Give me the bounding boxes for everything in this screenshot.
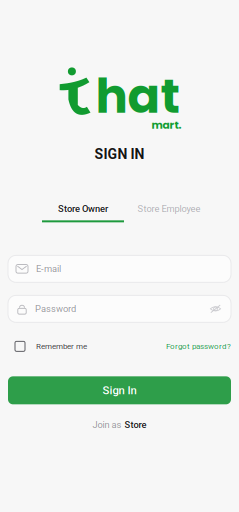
staticText: mart. bbox=[151, 117, 181, 132]
button[interactable]: Store Owner bbox=[40, 203, 126, 222]
button[interactable]: Store bbox=[124, 419, 146, 430]
staticText: Join as bbox=[92, 419, 121, 430]
staticText: Password bbox=[35, 303, 76, 314]
staticText: Remember me bbox=[36, 342, 87, 351]
staticText: Store bbox=[124, 419, 146, 430]
staticText: Forgot password? bbox=[166, 342, 231, 351]
staticText: Sign In bbox=[102, 384, 136, 397]
button[interactable]: Store Employee bbox=[126, 203, 212, 222]
button[interactable]: Sign In bbox=[8, 376, 231, 404]
button[interactable]: Forgot password? bbox=[166, 342, 231, 351]
staticText: Store Owner bbox=[58, 203, 108, 214]
staticText: SIGN IN bbox=[94, 146, 144, 162]
staticText: E-mail bbox=[36, 263, 61, 274]
staticText: Store Employee bbox=[137, 203, 200, 214]
staticText: hat bbox=[95, 62, 179, 130]
button[interactable]: Remember me bbox=[15, 341, 87, 351]
